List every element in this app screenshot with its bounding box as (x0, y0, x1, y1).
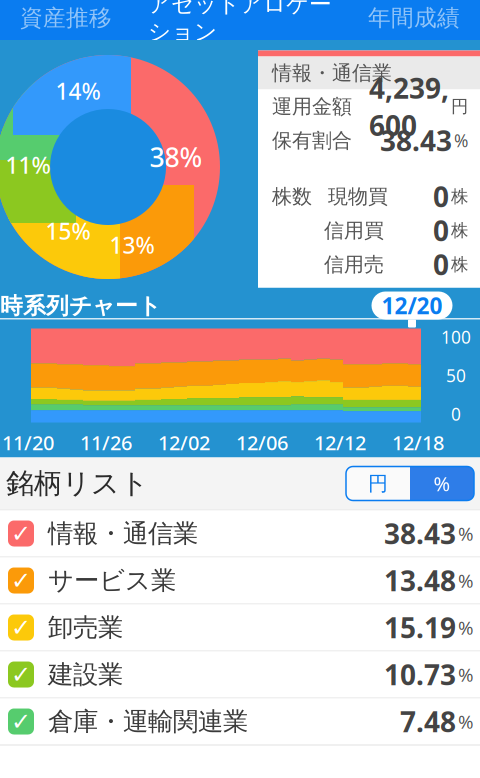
staticText: 0 (433, 246, 449, 283)
staticText: ✓ (11, 520, 31, 547)
staticText: 15.19 (384, 609, 456, 646)
button[interactable]: % (410, 466, 474, 500)
staticText: 12/06 (236, 429, 288, 456)
button[interactable]: アセットアロケーション (142, 0, 338, 40)
staticText: 15% (45, 216, 90, 246)
staticText: 円 (368, 471, 388, 496)
staticText: 38.43 (384, 515, 456, 552)
staticText: % (458, 709, 474, 734)
button[interactable]: 円 (346, 466, 410, 500)
staticText: ✓ (11, 661, 31, 688)
button[interactable]: ✓ (0, 557, 480, 604)
staticText: 12/18 (392, 429, 444, 456)
staticText: % (458, 521, 474, 546)
staticText: % (458, 662, 474, 687)
staticText: 円 (451, 96, 468, 117)
staticText: 信用売 (324, 252, 384, 277)
button[interactable]: ✓ (0, 604, 480, 651)
staticText: 年間成績 (368, 4, 460, 32)
staticText: 0 (433, 212, 449, 249)
staticText: % (454, 129, 468, 152)
staticText: 保有割合 (272, 128, 352, 153)
staticText: 12/02 (158, 429, 210, 456)
button[interactable]: ✓ (0, 651, 480, 698)
staticText: 10.73 (384, 656, 456, 693)
staticText: 時系列チャート (0, 292, 161, 320)
staticText: 卸売業 (48, 612, 123, 643)
staticText: 12/20 (381, 290, 442, 320)
staticText: % (458, 568, 474, 593)
staticText: 建設業 (48, 659, 123, 690)
staticText: 14% (55, 76, 100, 106)
staticText: 現物買 (328, 184, 388, 209)
staticText: 4,239,600 (369, 69, 449, 144)
staticText: 13% (109, 230, 154, 260)
staticText: 株数 (272, 184, 312, 209)
staticText: サービス業 (48, 565, 176, 596)
staticText: アセットアロケーション (148, 0, 332, 46)
staticText: ✓ (11, 708, 31, 735)
staticText: 11/20 (2, 429, 54, 456)
staticText: 株 (451, 254, 468, 275)
staticText: 13.48 (384, 562, 456, 599)
staticText: 12/12 (314, 429, 366, 456)
staticText: 0 (433, 178, 449, 215)
button[interactable]: 年間成績 (338, 0, 480, 40)
staticText: 7.48 (400, 703, 456, 740)
staticText: 11% (5, 150, 50, 180)
staticText: 資産推移 (20, 4, 112, 32)
staticText: 株 (451, 220, 468, 241)
button[interactable]: ✓ (0, 698, 480, 745)
staticText: 倉庫・運輸関連業 (48, 706, 248, 737)
button[interactable]: ✓ (0, 510, 480, 557)
staticText: 信用買 (324, 218, 384, 243)
button[interactable]: 資産推移 (0, 0, 142, 40)
staticText: ✓ (11, 567, 31, 594)
staticText: 0 (451, 402, 461, 425)
staticText: % (433, 470, 450, 497)
staticText: 情報・通信業 (48, 518, 198, 549)
staticText: 50 (446, 364, 466, 387)
staticText: 運用金額 (272, 94, 352, 119)
staticText: ✓ (11, 614, 31, 641)
staticText: 情報・通信業 (272, 61, 392, 85)
staticText: 株 (451, 186, 468, 207)
staticText: % (458, 615, 474, 640)
staticText: 11/26 (80, 429, 132, 456)
staticText: 銘柄リスト (6, 466, 149, 501)
staticText: 100 (441, 325, 471, 348)
staticText: 38% (149, 139, 202, 175)
staticText: 38.43 (380, 122, 452, 159)
